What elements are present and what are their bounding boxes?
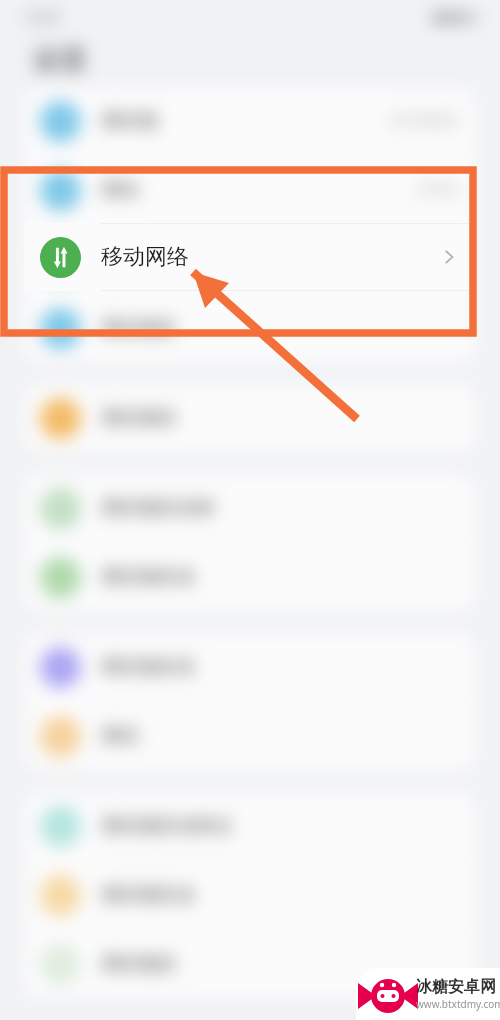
- button[interactable]: 测试项目: [24, 930, 476, 998]
- button[interactable]: 测试项: [24, 87, 476, 155]
- button[interactable]: Mobile network: [24, 223, 476, 291]
- staticText: 设置: [33, 43, 87, 77]
- staticText: 测试项目名称: [101, 496, 215, 520]
- button[interactable]: 测试项目名: [24, 633, 476, 701]
- button[interactable]: 测试: [24, 702, 476, 770]
- staticText: www.btxtdmy.com: [416, 997, 500, 1011]
- button[interactable]: 测试项目名称文: [24, 792, 476, 860]
- button[interactable]: 测试项目: [24, 294, 476, 362]
- button[interactable]: 测试项目: [24, 384, 476, 452]
- staticText: 测试项目: [101, 247, 177, 271]
- button[interactable]: 测试项目名称: [24, 474, 476, 542]
- staticText: 测试项目: [101, 406, 177, 430]
- button[interactable]: 测试: [24, 156, 476, 224]
- staticText: 测试项: [101, 109, 158, 133]
- staticText: 测试项目: [101, 952, 177, 976]
- staticText: ●●● ▮: [431, 7, 476, 25]
- staticText: 测试项目名: [101, 655, 196, 679]
- button[interactable]: 测试项目: [24, 225, 476, 293]
- staticText: 测试项目名称文: [101, 814, 234, 838]
- staticText: 测试项目: [101, 316, 177, 340]
- staticText: 测试: [101, 724, 139, 748]
- staticText: 冰糖安卓网: [416, 977, 496, 997]
- other: Mobile network: [40, 237, 81, 278]
- staticText: 测试项目名: [101, 565, 196, 589]
- staticText: 移动网络: [101, 243, 189, 271]
- button[interactable]: 测试项目名: [24, 543, 476, 611]
- staticText: 测试: [101, 178, 139, 202]
- staticText: 测试项目名: [101, 883, 196, 907]
- button[interactable]: 测试项目名: [24, 861, 476, 929]
